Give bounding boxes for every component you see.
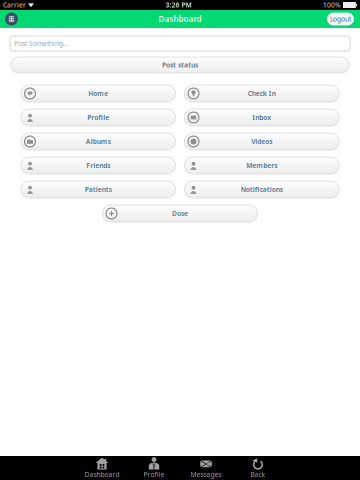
staticText: Dashboard	[84, 470, 119, 479]
button[interactable]: Logout	[327, 13, 354, 25]
button[interactable]: Post Something...	[10, 36, 350, 51]
button[interactable]: Messages	[180, 456, 232, 480]
staticText: Patients	[85, 185, 112, 194]
staticText: Profile	[87, 113, 109, 122]
button[interactable]: Albums	[21, 133, 175, 150]
staticText: Profile	[143, 470, 164, 479]
button[interactable]: Inbox	[184, 109, 339, 126]
button[interactable]: Menu	[5, 12, 18, 25]
button[interactable]: Notifications	[184, 181, 339, 198]
button[interactable]: Back	[232, 456, 284, 480]
button[interactable]: Check In	[184, 85, 339, 102]
staticText: Carrier	[3, 1, 26, 9]
button[interactable]: Videos	[184, 133, 339, 150]
staticText: Members	[246, 161, 277, 170]
button[interactable]: Post status	[11, 57, 349, 73]
staticText: 3:26 PM	[165, 1, 191, 9]
staticText: Post status	[162, 61, 198, 69]
button[interactable]: Dose	[102, 205, 257, 222]
button[interactable]: Profile	[128, 456, 180, 480]
staticText: 100%	[323, 1, 341, 9]
staticText: Logout	[330, 15, 351, 23]
staticText: Albums	[86, 137, 111, 146]
button[interactable]: Profile	[21, 109, 175, 126]
staticText: Messages	[190, 470, 221, 479]
staticText: Dose	[172, 209, 188, 218]
staticText: Back	[250, 470, 265, 479]
staticText: Post Something...	[14, 39, 69, 48]
button[interactable]: Members	[184, 157, 339, 174]
staticText: Check In	[248, 89, 276, 98]
staticText: Home	[88, 89, 108, 98]
button[interactable]: Patients	[21, 181, 175, 198]
button[interactable]: Dashboard	[76, 456, 128, 480]
button[interactable]: Friends	[21, 157, 175, 174]
staticText: Inbox	[252, 113, 271, 122]
staticText: Dashboard	[158, 14, 201, 24]
button[interactable]: Home	[21, 85, 175, 102]
staticText: Notifications	[241, 185, 283, 194]
staticText: Friends	[86, 161, 110, 170]
staticText: Videos	[251, 137, 272, 146]
